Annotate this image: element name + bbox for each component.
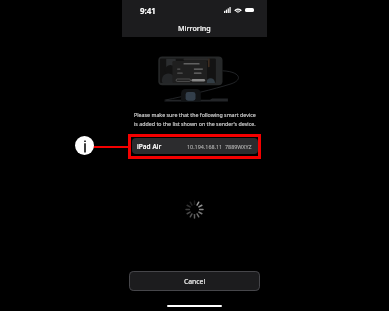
staticText: Please make sure that the following smar… (134, 111, 256, 118)
staticText: iPad Air (137, 142, 162, 151)
staticText: 9:41 (140, 5, 156, 16)
staticText: Mirroring (178, 23, 211, 33)
staticText: is added to the list shown on the sender… (134, 120, 256, 127)
staticText: Cancel (184, 277, 206, 286)
button[interactable]: iPad Air (132, 138, 258, 154)
staticText: 10.194.168.11 7889WXYZ (187, 143, 252, 150)
button[interactable]: Cancel (129, 271, 260, 291)
button[interactable]: Information (75, 136, 94, 155)
